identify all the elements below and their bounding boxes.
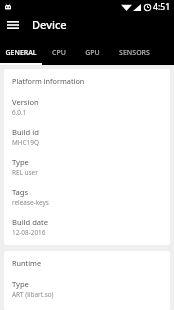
- staticText: 4:51: [153, 1, 171, 13]
- staticText: 12-08-2016: [12, 228, 46, 237]
- staticText: REL user: [12, 168, 38, 177]
- staticText: Platform information: [12, 76, 85, 86]
- staticText: Type: [12, 157, 29, 167]
- staticText: release-keys: [12, 198, 49, 207]
- button[interactable]: GPU: [76, 36, 108, 65]
- staticText: Build id: [12, 127, 39, 137]
- button[interactable]: Open navigation drawer: [0, 13, 25, 36]
- staticText: CPU: [52, 48, 66, 58]
- staticText: Tags: [12, 187, 29, 197]
- staticText: Type: [12, 279, 29, 289]
- staticText: GENERAL: [5, 48, 37, 58]
- staticText: 6.0.1: [12, 108, 27, 117]
- button[interactable]: CPU: [42, 36, 76, 65]
- button[interactable]: GENERAL: [0, 36, 42, 65]
- staticText: Build date: [12, 217, 49, 227]
- staticText: Device: [32, 17, 67, 32]
- staticText: ART (libart.so): [12, 290, 54, 299]
- staticText: MHC19Q: [12, 138, 39, 147]
- staticText: Runtime: [12, 258, 42, 268]
- button[interactable]: SENSORS: [108, 36, 160, 65]
- staticText: SENSORS: [119, 48, 150, 58]
- staticText: Version: [12, 97, 39, 107]
- staticText: GPU: [85, 48, 100, 58]
